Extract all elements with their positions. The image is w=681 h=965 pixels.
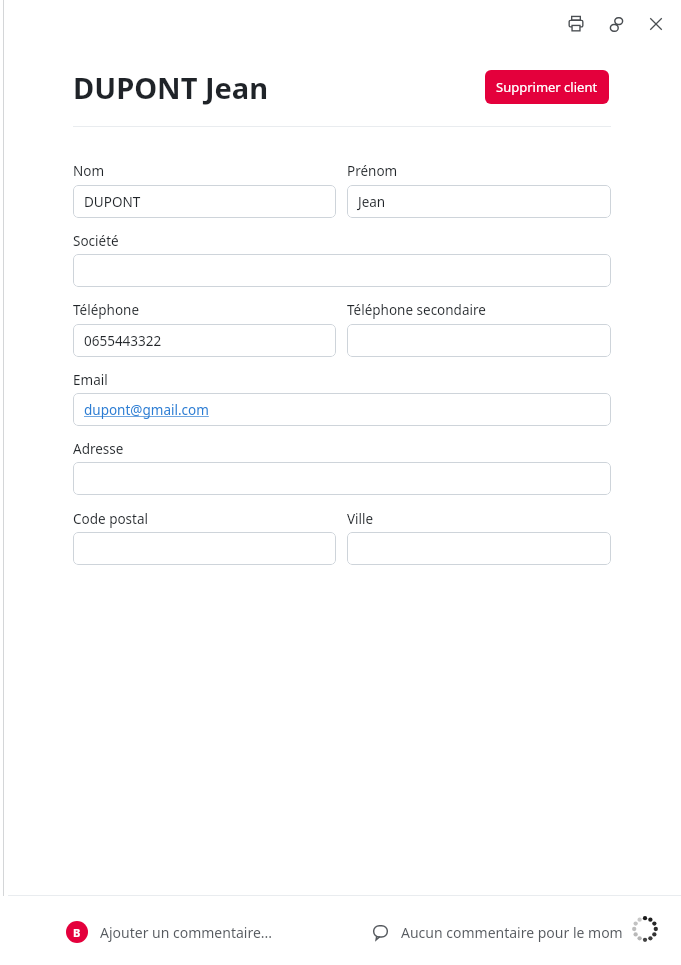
- button[interactable]: Supprimer client: [485, 70, 609, 104]
- button[interactable]: [73, 462, 611, 495]
- button[interactable]: dupont@gmail.com: [73, 393, 611, 426]
- button[interactable]: Aucun commentaire pour le moment: [370, 912, 645, 952]
- button[interactable]: Print: [560, 8, 592, 40]
- staticText: DUPONT: [84, 193, 141, 211]
- staticText: 0655443322: [84, 332, 162, 350]
- button[interactable]: DUPONT: [73, 185, 336, 218]
- staticText: Jean: [358, 193, 386, 211]
- button[interactable]: 0655443322: [73, 324, 336, 357]
- staticText: Email: [73, 371, 108, 389]
- button[interactable]: Copy link: [600, 8, 632, 40]
- button[interactable]: [347, 532, 611, 565]
- staticText: DUPONT Jean: [73, 68, 269, 107]
- button[interactable]: B: [66, 912, 273, 952]
- staticText: Téléphone: [73, 301, 140, 319]
- staticText: B: [73, 925, 81, 940]
- staticText: Adresse: [73, 440, 124, 458]
- staticText: Supprimer client: [496, 78, 598, 96]
- staticText: Ajouter un commentaire...: [100, 923, 273, 942]
- staticText: Téléphone secondaire: [347, 301, 486, 319]
- staticText: Code postal: [73, 510, 148, 528]
- staticText: Nom: [73, 162, 105, 180]
- button[interactable]: [73, 532, 336, 565]
- button[interactable]: Loading: [622, 906, 668, 952]
- button[interactable]: [73, 254, 611, 287]
- staticText: Ville: [347, 510, 374, 528]
- button[interactable]: Close: [640, 8, 672, 40]
- staticText: Société: [73, 232, 119, 250]
- staticText: Prénom: [347, 162, 398, 180]
- button[interactable]: [347, 324, 611, 357]
- staticText: Aucun commentaire pour le moment: [401, 923, 645, 942]
- staticText: dupont@gmail.com: [84, 401, 209, 419]
- button[interactable]: Jean: [347, 185, 611, 218]
